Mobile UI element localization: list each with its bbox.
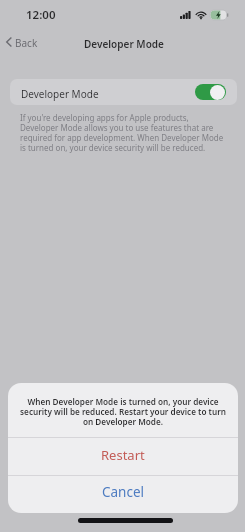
- staticText: Back: [15, 36, 38, 50]
- staticText: If you're developing apps for Apple prod…: [20, 112, 229, 154]
- staticText: Cancel: [102, 483, 145, 501]
- button[interactable]: Developer Mode: [10, 79, 237, 105]
- other: Developer Mode toggle: [195, 84, 226, 100]
- staticText: 12:00: [26, 7, 56, 23]
- button[interactable]: Cancel: [8, 476, 238, 513]
- button[interactable]: Back: [0, 30, 44, 50]
- staticText: Developer Mode: [21, 87, 99, 101]
- staticText: When Developer Mode is turned on, your d…: [15, 396, 231, 428]
- button[interactable]: Restart: [8, 438, 238, 475]
- staticText: Restart: [101, 446, 145, 464]
- staticText: Developer Mode: [84, 37, 164, 51]
